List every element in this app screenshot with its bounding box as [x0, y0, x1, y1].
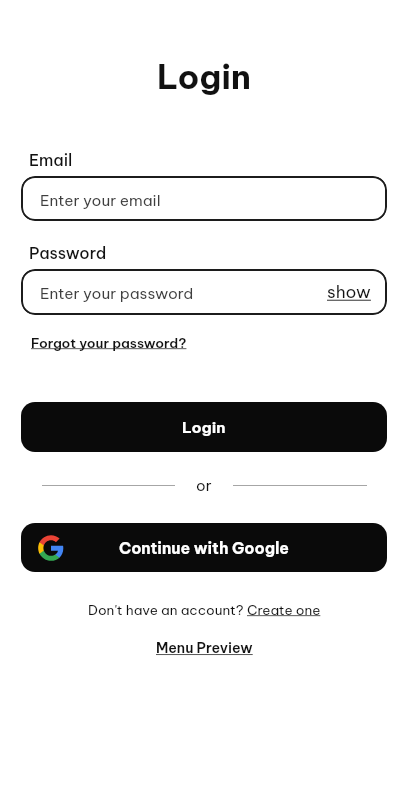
staticText: Forgot your password? [31, 334, 187, 351]
button[interactable]: Enter your email [21, 176, 387, 221]
staticText: show [327, 281, 371, 303]
staticText: Login [182, 418, 226, 437]
button[interactable]: Continue with Google [21, 523, 387, 572]
button[interactable]: Enter your password [21, 269, 387, 315]
staticText: Don't have an account? [88, 601, 247, 618]
button[interactable]: Login [21, 402, 387, 452]
other: Google [37, 534, 65, 562]
button[interactable]: Menu Preview [156, 639, 253, 657]
button[interactable]: Forgot your password? [31, 334, 187, 351]
staticText: Create one [247, 601, 321, 618]
staticText: Enter your password [40, 284, 194, 303]
staticText: Menu Preview [156, 639, 253, 657]
staticText: or [196, 476, 212, 495]
staticText: Password [29, 243, 107, 263]
staticText: Login [157, 56, 251, 98]
staticText: Continue with Google [119, 538, 289, 558]
button[interactable]: show [327, 281, 371, 303]
staticText: Enter your email [40, 191, 161, 210]
staticText: Email [29, 150, 73, 170]
button[interactable]: Create one [247, 601, 321, 618]
